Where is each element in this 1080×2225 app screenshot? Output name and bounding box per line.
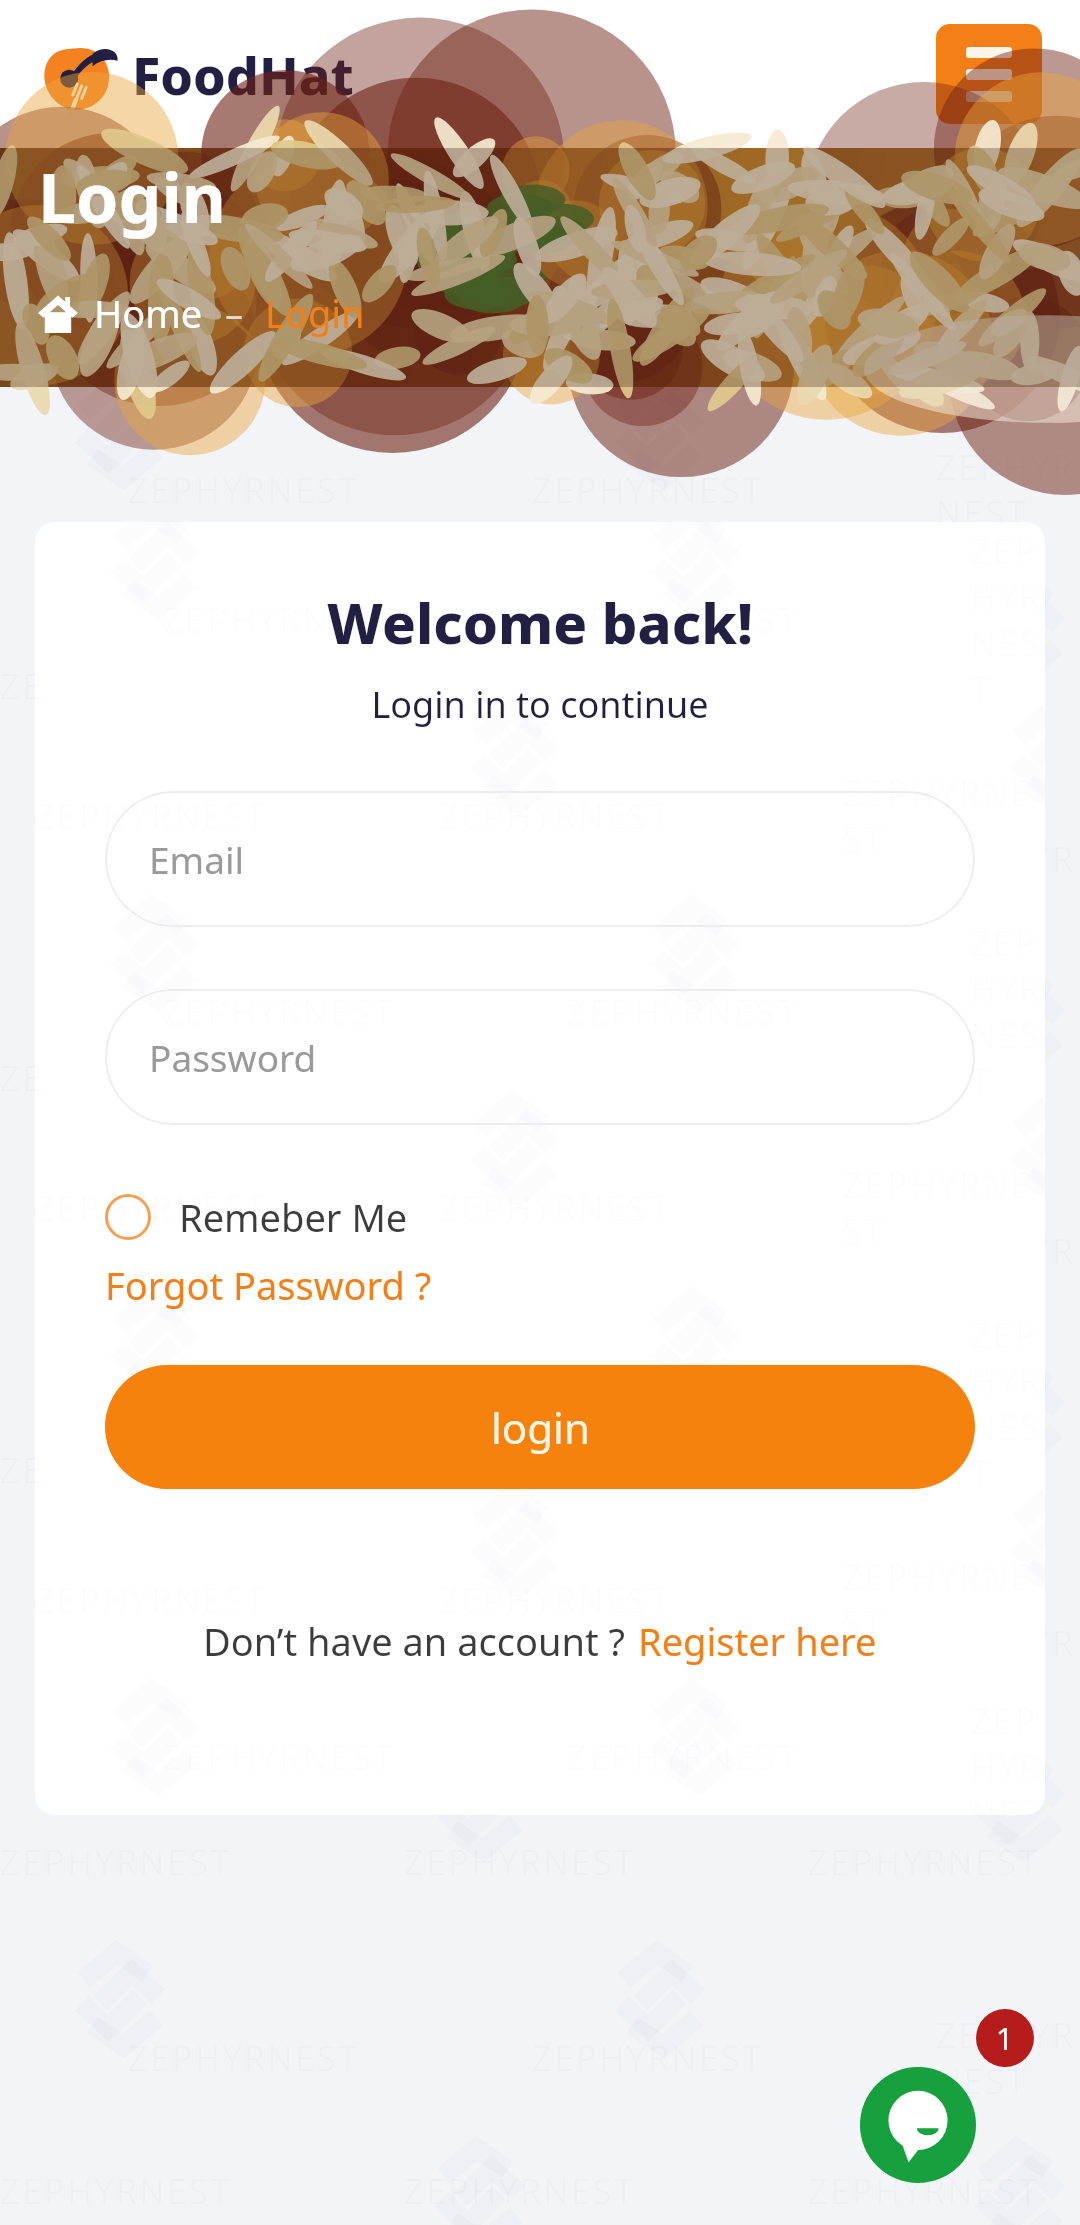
staticText: ZEPHYRNEST [163,597,395,643]
button[interactable]: login [105,1365,975,1489]
staticText: ZEPHYRNEST [0,1447,232,1493]
staticText: ZEPHYRNEST [404,663,636,709]
staticText: ZEPHYRNEST [843,1554,1045,1646]
button[interactable]: Remeber Me [105,1191,975,1243]
button[interactable]: Register here [638,1615,877,1667]
staticText: login [491,1399,590,1456]
staticText: ZEPHYRNEST [971,1312,1045,1496]
staticText: ZEPHYRNEST [0,271,232,317]
staticText: ZEPHYRNEST [567,1381,799,1427]
staticText: ZEPHYRNEST [163,989,395,1035]
staticText: ZEPHYRNEST [128,75,360,121]
staticText: Home [94,287,203,339]
button[interactable]: Open chat [860,2067,976,2183]
staticText: ZEPHYRNEST [128,1643,360,1689]
staticText: ZEPHYRNEST [936,52,1080,144]
staticText: ZEPHYRNEST [808,271,1040,317]
staticText: ZEPHYRNEST [936,1228,1080,1320]
staticText: ZEPHYRNEST [936,1620,1080,1712]
button[interactable]: Password [105,989,975,1125]
staticText: Password [149,1032,317,1082]
staticText: 1 [996,2018,1014,2059]
staticText: ZEPHYRNEST [936,836,1080,928]
staticText: ZEPHYRNEST [404,1447,636,1493]
staticText: Login in to continue [371,680,709,729]
staticText: ZEPHYRNEST [532,467,764,513]
staticText: – [225,289,243,338]
staticText: ZEPHYRNEST [936,2012,1080,2104]
button[interactable]: Forgot Password ? [105,1259,432,1311]
staticText: Welcome back! [327,584,753,660]
staticText: ZEPHYRNEST [128,1251,360,1297]
staticText: ZEPHYRNEST [0,1055,232,1101]
button[interactable]: FoodHat [38,35,354,113]
staticText: ZEPHYRNEST [567,597,799,643]
staticText: ZEPHYRNEST [35,1185,267,1231]
staticText: ZEPHYRNEST [0,663,232,709]
staticText: ZEPHYRNEST [936,444,1080,536]
staticText: ZEPHYRNEST [808,1447,1040,1493]
button[interactable]: Home [38,287,203,339]
staticText: FoodHat [132,39,354,110]
button[interactable]: Email [105,791,975,927]
staticText: ZEPHYRNEST [532,75,764,121]
button[interactable]: Login [265,287,365,339]
staticText: Don’t have an account ? [203,1615,626,1667]
staticText: ZEPHYRNEST [567,989,799,1035]
staticText: Login [38,150,227,243]
button[interactable]: Open menu [936,24,1042,124]
staticText: ZEPHYRNEST [404,271,636,317]
staticText: Email [149,834,245,884]
staticText: ZEPHYRNEST [128,859,360,905]
staticText: ZEPHYRNEST [808,2168,1040,2214]
staticText: Remeber Me [179,1191,408,1243]
staticText: ZEPHYRNEST [532,1643,764,1689]
